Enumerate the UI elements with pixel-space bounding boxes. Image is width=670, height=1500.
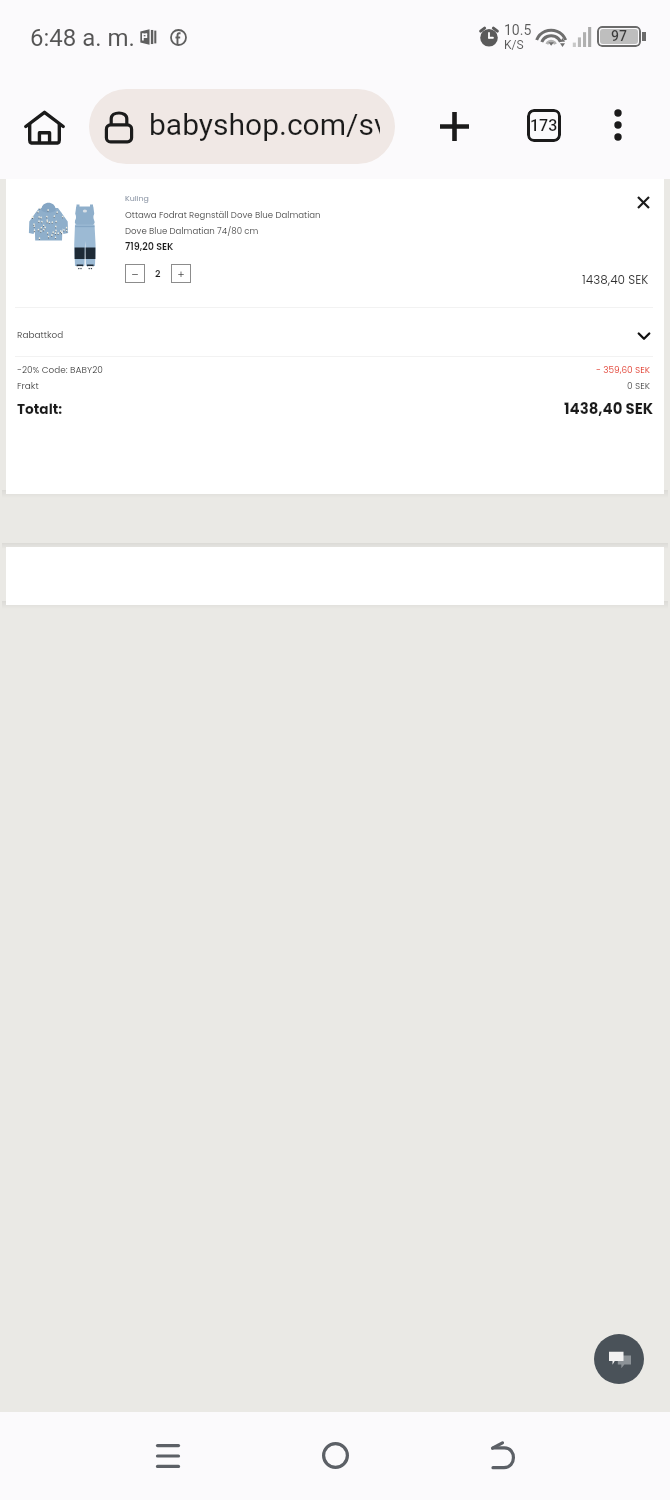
staticText: 2 (155, 267, 161, 280)
button[interactable]: Home (15, 99, 73, 157)
staticText: 1438,40 SEK (564, 398, 654, 419)
staticText: 719,20 SEK (125, 240, 174, 253)
button[interactable]: Decrease quantity (125, 264, 145, 283)
button[interactable]: More options (590, 97, 646, 153)
staticText: 97 (611, 29, 627, 43)
staticText: 6:48 a. m. (30, 24, 135, 52)
button[interactable]: Back (469, 1421, 538, 1490)
staticText: Dove Blue Dalmatian 74/80 cm (125, 225, 259, 237)
staticText: Totalt: (17, 400, 63, 419)
staticText: 173 (530, 116, 558, 135)
button[interactable]: Search or type URL (89, 89, 395, 164)
staticText: - 359,60 SEK (596, 364, 651, 376)
button[interactable]: Ottawa Fodrat Regnställ Dove Blue Dalmat… (6, 183, 606, 303)
staticText: 0 SEK (627, 380, 651, 392)
button[interactable]: Tabs (516, 97, 572, 153)
button[interactable]: Increase quantity (171, 264, 191, 283)
staticText: – (131, 266, 139, 281)
button[interactable]: Remove item (620, 183, 660, 223)
button[interactable]: Chat with us (594, 1334, 644, 1384)
button[interactable]: New tab (426, 98, 482, 154)
staticText: K/S (504, 38, 524, 52)
staticText: + (177, 266, 185, 281)
button[interactable]: Rabattkod (6, 307, 662, 356)
staticText: Ottawa Fodrat Regnställ Dove Blue Dalmat… (125, 209, 321, 221)
staticText: 1438,40 SEK (582, 272, 649, 289)
staticText: -20% Code: BABY20 (17, 364, 103, 376)
button[interactable]: Recent apps (133, 1421, 202, 1490)
staticText: Kuling (125, 193, 149, 204)
button[interactable]: Home (301, 1421, 370, 1490)
staticText: babyshop.com/sv (149, 107, 380, 142)
staticText: Rabattkod (17, 329, 64, 341)
staticText: 10.5 (504, 22, 532, 38)
staticText: Frakt (17, 380, 39, 392)
